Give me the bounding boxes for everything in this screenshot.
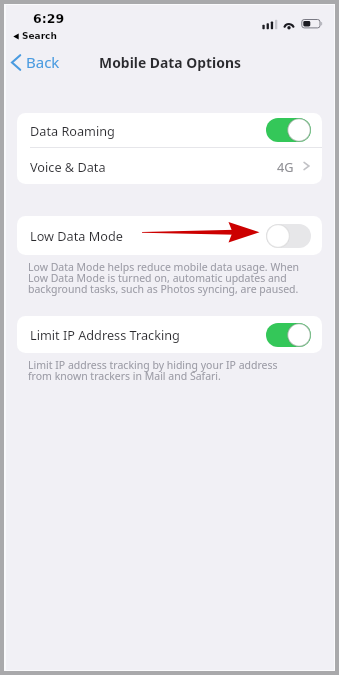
staticText: Low Data Mode helps reduce mobile data u…	[28, 260, 304, 297]
button[interactable]: Data Roaming toggle	[266, 118, 311, 142]
button[interactable]: Limit IP Address Tracking	[17, 316, 322, 353]
staticText: Voice & Data	[30, 158, 106, 175]
staticText: Search	[22, 31, 57, 41]
button[interactable]: Voice & Data	[17, 148, 322, 184]
button[interactable]: Search	[13, 31, 57, 41]
button[interactable]: Back	[9, 50, 62, 74]
staticText: Limit IP address tracking by hiding your…	[28, 358, 304, 384]
button[interactable]: Data Roaming	[17, 113, 322, 147]
staticText: 4G	[277, 158, 294, 175]
button[interactable]: Low Data Mode toggle	[266, 224, 311, 248]
staticText: 6:29	[33, 11, 65, 26]
staticText: Data Roaming	[30, 122, 115, 139]
button[interactable]: Low Data Mode	[17, 216, 322, 255]
staticText: Limit IP Address Tracking	[30, 326, 180, 343]
staticText: Back	[26, 52, 60, 72]
staticText: Mobile Data Options	[99, 53, 241, 72]
button[interactable]: Limit IP Address Tracking toggle	[266, 323, 311, 347]
staticText: Low Data Mode	[30, 227, 123, 244]
